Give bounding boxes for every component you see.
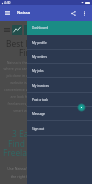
button[interactable]: My invoices [27, 79, 92, 93]
button[interactable]: Post a task [27, 93, 92, 107]
staticText: 4:30 [4, 1, 11, 5]
button[interactable]: Dashboard [27, 21, 92, 35]
staticText: 3 Easy Steps [12, 128, 61, 139]
button[interactable]: Share [68, 8, 78, 18]
button[interactable]: My orders [27, 50, 92, 64]
button[interactable]: More options [79, 8, 89, 18]
staticText: My profile [32, 41, 47, 45]
staticText: Find the Best [8, 138, 60, 149]
staticText: Naissa is the platform to where you can … [1, 60, 53, 113]
staticText: Dashboard [32, 26, 49, 30]
button[interactable]: My profile [27, 36, 92, 50]
button[interactable]: Message [27, 107, 92, 121]
staticText: My orders [32, 55, 47, 59]
button[interactable]: Sign out [27, 122, 92, 136]
staticText: Best Freelance [6, 38, 64, 49]
button[interactable]: Open navigation drawer [2, 8, 12, 18]
staticText: Sign out [32, 127, 45, 131]
staticText: Freelancers [3, 147, 49, 158]
staticText: Message [32, 112, 46, 116]
staticText: Use Naissa's easy steps the right freela… [4, 166, 50, 179]
staticText: Post a task [32, 98, 48, 102]
staticText: My invoices [32, 84, 50, 88]
staticText: My jobs [32, 69, 44, 73]
staticText: Naissa [17, 10, 31, 16]
button[interactable]: My jobs [27, 64, 92, 78]
staticText: Finder Platform [19, 47, 81, 58]
